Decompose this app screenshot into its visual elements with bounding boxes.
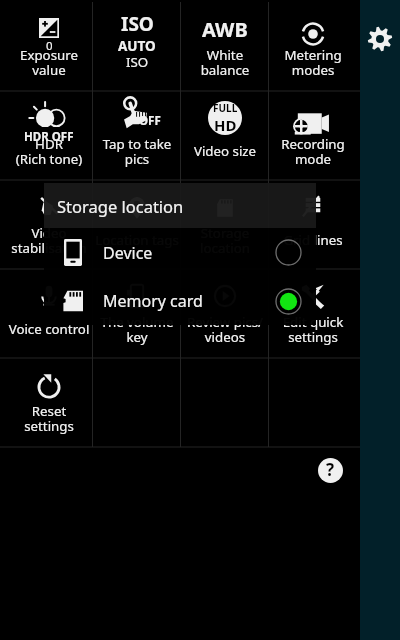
staticText: OFF xyxy=(139,113,161,129)
button[interactable]: Edit quick settings xyxy=(269,269,357,358)
staticText: Memory card xyxy=(103,290,203,312)
button[interactable]: Location tags xyxy=(93,180,181,269)
button[interactable]: Grid lines xyxy=(269,180,357,269)
staticText: ISO xyxy=(121,11,154,37)
staticText: Video size xyxy=(181,142,269,160)
button[interactable]: Help xyxy=(318,458,343,483)
staticText: Metering modes xyxy=(269,46,357,79)
button[interactable]: Recording mode xyxy=(269,91,357,180)
button[interactable]: FULL xyxy=(181,91,269,180)
button[interactable]: Settings xyxy=(367,26,393,52)
button[interactable]: Review pics/ videos xyxy=(181,269,269,358)
button[interactable]: Video stabilisation xyxy=(5,180,93,269)
button[interactable]: OFF xyxy=(93,91,181,180)
staticText: HDR (Rich tone) xyxy=(5,135,93,168)
button[interactable]: Reset settings xyxy=(5,358,93,447)
staticText: Location tags xyxy=(93,231,181,249)
button[interactable]: ISO xyxy=(93,2,181,91)
button[interactable]: AWB xyxy=(181,2,269,91)
button[interactable]: HDR OFF xyxy=(5,91,93,180)
button[interactable]: Storage location xyxy=(181,180,269,269)
button[interactable]: Voice control xyxy=(5,269,93,358)
staticText: ISO xyxy=(93,53,181,71)
staticText: The volume key xyxy=(93,313,181,346)
staticText: White balance xyxy=(181,46,269,79)
staticText: Edit quick settings xyxy=(269,313,357,346)
staticText: Tap to take pics xyxy=(93,135,181,168)
staticText: Review pics/ videos xyxy=(181,313,269,346)
staticText: Grid lines xyxy=(269,231,357,249)
staticText: Exposure value xyxy=(5,46,93,79)
staticText: Device xyxy=(103,242,153,264)
staticText: ? xyxy=(326,458,335,481)
button[interactable]: Memory card xyxy=(44,277,316,325)
staticText: Storage location xyxy=(181,224,269,257)
button[interactable]: Metering modes xyxy=(269,2,357,91)
button[interactable]: The volume key xyxy=(93,269,181,358)
staticText: Storage location xyxy=(57,195,184,217)
staticText: AUTO xyxy=(118,37,156,55)
staticText: HDR OFF xyxy=(24,129,74,145)
staticText: Recording mode xyxy=(269,135,357,168)
button[interactable]: 0 xyxy=(5,2,93,91)
button[interactable]: Device xyxy=(44,228,316,277)
staticText: FULL xyxy=(213,101,238,115)
staticText: HD xyxy=(214,115,237,135)
staticText: AWB xyxy=(202,16,248,43)
staticText: Voice control xyxy=(5,320,93,338)
staticText: Video stabilisation xyxy=(5,224,93,257)
staticText: 0 xyxy=(46,38,53,54)
staticText: Reset settings xyxy=(5,402,93,435)
